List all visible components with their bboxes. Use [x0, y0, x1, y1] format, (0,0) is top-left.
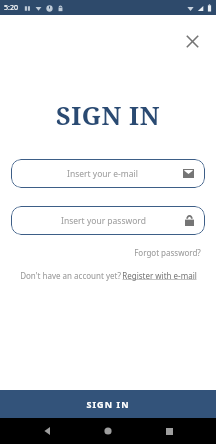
button[interactable]: Close	[178, 27, 206, 55]
button[interactable]: SIGN IN	[0, 390, 216, 418]
staticText: Register with e-mail	[122, 270, 197, 281]
staticText: 5:20	[4, 3, 18, 13]
staticText: SIGN IN	[86, 398, 130, 410]
staticText: Don't have an account yet?	[19, 270, 122, 281]
button[interactable]: Back	[35, 418, 61, 444]
button[interactable]: Forgot password?	[132, 245, 203, 260]
button[interactable]: Recent apps	[156, 418, 182, 444]
button[interactable]: Insert your password	[11, 206, 205, 235]
button[interactable]: Insert your e-mail	[11, 159, 205, 188]
staticText: Insert your password	[22, 215, 185, 227]
staticText: Forgot password?	[134, 247, 201, 258]
button[interactable]: Register with e-mail	[122, 270, 197, 281]
staticText: Insert your e-mail	[22, 168, 183, 180]
staticText: SIGN IN	[56, 98, 160, 132]
button[interactable]: Home	[95, 418, 121, 444]
